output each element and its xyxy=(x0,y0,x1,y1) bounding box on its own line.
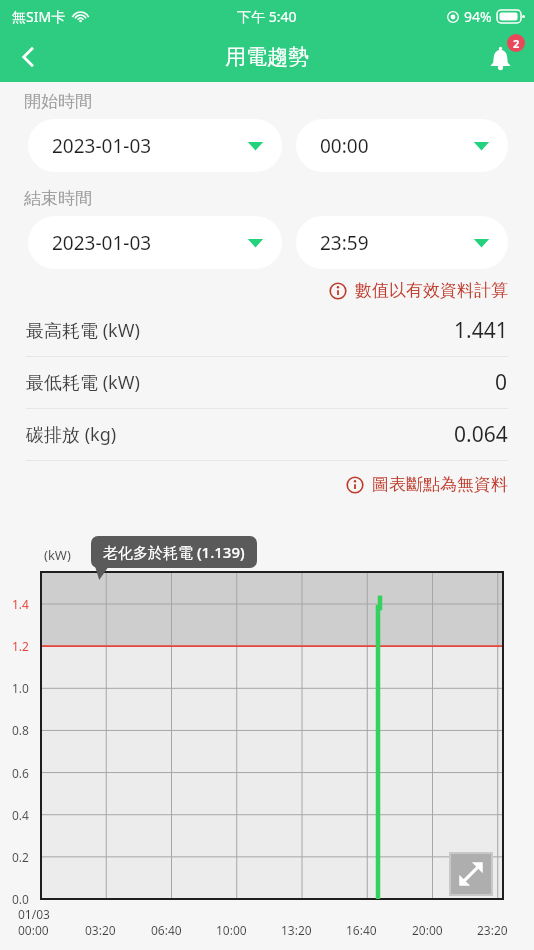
staticText: 01/03 xyxy=(18,906,50,922)
staticText: 0.8 xyxy=(12,722,29,738)
button[interactable]: 23:59 xyxy=(296,216,508,269)
staticText: 結束時間 xyxy=(24,188,92,209)
staticText: 用電趨勢 xyxy=(225,44,309,70)
staticText: 1.0 xyxy=(12,680,29,696)
staticText: 0.6 xyxy=(12,765,29,781)
button[interactable]: 最高耗電 (kW) xyxy=(0,305,534,356)
staticText: 20:00 xyxy=(412,922,443,938)
staticText: 23:59 xyxy=(320,230,369,256)
staticText: 16:40 xyxy=(346,922,377,938)
staticText: 2023-01-03 xyxy=(52,133,152,159)
button[interactable]: 最低耗電 (kW) xyxy=(0,357,534,408)
staticText: 2023-01-03 xyxy=(52,230,152,256)
staticText: 13:20 xyxy=(281,922,312,938)
staticText: 1.4 xyxy=(12,596,29,612)
staticText: 最低耗電 (kW) xyxy=(26,370,140,395)
staticText: 94% xyxy=(464,7,492,26)
staticText: 0.064 xyxy=(454,420,508,449)
button[interactable]: 2023-01-03 xyxy=(28,216,282,269)
staticText: (kW) xyxy=(44,546,71,564)
button[interactable]: Back xyxy=(6,34,52,80)
staticText: 00:00 xyxy=(320,133,369,159)
staticText: 數值以有效資料計算 xyxy=(355,280,508,301)
staticText: 1.2 xyxy=(12,638,29,654)
staticText: 06:40 xyxy=(151,922,182,938)
staticText: 老化多於耗電 (1.139) xyxy=(103,542,245,562)
button[interactable]: 碳排放 (kg) xyxy=(0,409,534,460)
staticText: 10:00 xyxy=(216,922,247,938)
staticText: 23:20 xyxy=(477,922,508,938)
staticText: 最高耗電 (kW) xyxy=(26,318,140,343)
button[interactable]: Expand chart xyxy=(450,853,492,895)
staticText: 03:20 xyxy=(85,922,116,938)
staticText: 圖表斷點為無資料 xyxy=(372,474,508,495)
staticText: 2 xyxy=(513,36,520,51)
button[interactable]: 2023-01-03 xyxy=(28,119,282,172)
staticText: 0.0 xyxy=(12,891,29,907)
staticText: 無SIM卡 xyxy=(12,7,66,26)
staticText: 0.4 xyxy=(12,807,29,823)
staticText: 0.2 xyxy=(12,849,29,865)
staticText: 0 xyxy=(495,368,508,397)
staticText: 1.441 xyxy=(454,316,508,345)
staticText: 開始時間 xyxy=(24,91,92,112)
staticText: 碳排放 (kg) xyxy=(26,422,117,447)
staticText: 下午 5:40 xyxy=(237,7,297,26)
staticText: 00:00 xyxy=(18,922,49,938)
button[interactable]: Notifications xyxy=(478,35,522,79)
button[interactable]: 00:00 xyxy=(296,119,508,172)
